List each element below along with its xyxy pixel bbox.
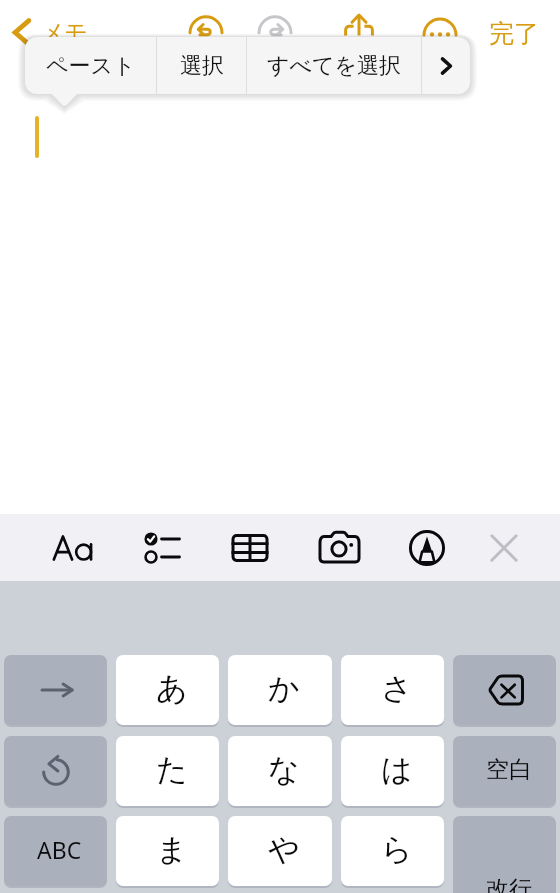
button[interactable]: ま [116, 816, 219, 886]
button[interactable]: あ [116, 655, 219, 725]
staticText: 選択 [180, 52, 224, 80]
button[interactable]: 完了 [489, 18, 539, 49]
button[interactable]: 選択 [157, 37, 246, 94]
button[interactable]: Redo [255, 0, 295, 40]
button[interactable]: 空白 [453, 736, 556, 806]
button[interactable]: や [228, 816, 332, 886]
staticText: た [156, 750, 188, 789]
staticText: な [268, 750, 300, 789]
button[interactable]: 改行 [453, 816, 556, 893]
staticText: は [381, 750, 413, 789]
staticText: 空白 [486, 755, 532, 784]
button[interactable]: UNDO [4, 736, 107, 806]
button[interactable]: Camera [315, 524, 363, 572]
staticText: ら [381, 830, 413, 869]
staticText: ABC [37, 834, 82, 865]
staticText: ま [156, 830, 188, 869]
button[interactable]: は [341, 736, 444, 806]
staticText: 改行 [486, 875, 532, 893]
button[interactable]: Markup [403, 524, 451, 572]
button[interactable]: DEL [453, 655, 556, 725]
staticText: あ [156, 669, 188, 708]
staticText: すべてを選択 [267, 52, 402, 80]
button[interactable]: More options [420, 0, 460, 40]
button[interactable]: か [228, 655, 332, 725]
button[interactable]: ら [341, 816, 444, 886]
staticText: か [268, 669, 300, 708]
staticText: ペースト [46, 52, 136, 80]
button[interactable]: さ [341, 655, 444, 725]
button[interactable]: More actions [422, 37, 470, 94]
staticText: 完了 [489, 18, 539, 49]
button[interactable]: Text formatting [50, 524, 98, 572]
button[interactable]: Checklist [138, 524, 186, 572]
staticText: さ [381, 669, 413, 708]
button[interactable]: Share [339, 0, 379, 40]
button[interactable]: ABC [4, 816, 107, 886]
button[interactable]: → [4, 655, 107, 725]
button[interactable]: すべてを選択 [247, 37, 421, 94]
button[interactable]: Hide keyboard [480, 524, 528, 572]
button[interactable]: Undo [186, 0, 226, 40]
button[interactable]: な [228, 736, 332, 806]
button[interactable]: た [116, 736, 219, 806]
staticText: メモ [41, 18, 89, 47]
button[interactable]: Table [226, 524, 274, 572]
staticText: や [268, 830, 300, 869]
button[interactable]: メモ [10, 18, 89, 47]
button[interactable]: ペースト [25, 37, 156, 94]
